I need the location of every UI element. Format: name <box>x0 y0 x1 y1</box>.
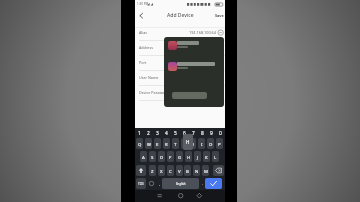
button[interactable]: Z <box>149 165 156 176</box>
staticText: Device Password <box>139 90 169 95</box>
staticText: 5 <box>174 130 177 137</box>
button[interactable]: Save <box>213 11 225 20</box>
staticText: H <box>187 154 191 160</box>
staticText: U <box>191 141 195 147</box>
staticText: User Name <box>139 75 159 80</box>
button[interactable] <box>154 191 165 201</box>
button[interactable] <box>194 191 205 201</box>
staticText: L <box>214 154 217 160</box>
staticText: D <box>160 154 164 160</box>
button[interactable]: J <box>194 151 201 162</box>
staticText: E <box>156 141 159 147</box>
staticText: C <box>169 168 172 174</box>
staticText: Z <box>151 168 154 174</box>
button[interactable]: I <box>198 138 205 149</box>
button[interactable] <box>213 165 224 176</box>
button[interactable] <box>168 41 177 50</box>
staticText: 4 <box>165 130 168 137</box>
staticText: G <box>178 154 182 160</box>
button[interactable]: C <box>167 165 174 176</box>
staticText: Add Device <box>167 12 194 19</box>
staticText: ?123 <box>138 182 144 186</box>
staticText: W <box>147 141 151 147</box>
staticText: 9 <box>210 130 213 137</box>
button[interactable] <box>168 62 177 71</box>
staticText: X <box>160 168 163 174</box>
button[interactable]: R <box>163 138 170 149</box>
staticText: F <box>169 154 172 160</box>
staticText: 1:30 PM <box>137 2 148 6</box>
button[interactable]: F <box>167 151 174 162</box>
staticText: O <box>209 141 213 147</box>
button[interactable] <box>205 178 222 189</box>
button[interactable]: L <box>212 151 219 162</box>
button[interactable]: English <box>162 178 199 189</box>
button[interactable] <box>136 165 146 176</box>
staticText: S <box>151 154 154 160</box>
staticText: T <box>174 141 177 147</box>
button[interactable]: D <box>158 151 165 162</box>
staticText: Alias <box>139 30 148 35</box>
button[interactable]: B <box>184 165 191 176</box>
staticText: 0 <box>219 130 222 137</box>
button[interactable]: S <box>149 151 156 162</box>
staticText: 7 <box>192 130 195 137</box>
button[interactable]: A <box>140 151 147 162</box>
staticText: Address <box>139 45 153 50</box>
button[interactable]: O <box>207 138 214 149</box>
button[interactable]: W <box>145 138 152 149</box>
staticText: , <box>159 181 161 186</box>
staticText: I <box>201 141 203 147</box>
staticText: R <box>165 141 168 147</box>
button[interactable]: N <box>193 165 200 176</box>
staticText: 1 <box>138 130 141 137</box>
button[interactable]: Q <box>136 138 143 149</box>
staticText: Q <box>138 141 142 147</box>
staticText: N <box>195 168 199 174</box>
staticText: P <box>218 141 221 147</box>
button[interactable]: K <box>203 151 210 162</box>
staticText: English <box>176 182 186 186</box>
staticText: Save <box>215 13 224 18</box>
staticText: A <box>142 154 145 160</box>
button[interactable]: G <box>176 151 183 162</box>
staticText: 2 <box>147 130 150 137</box>
button[interactable]: H <box>185 151 192 162</box>
button[interactable]: ?123 <box>136 178 146 189</box>
button[interactable] <box>147 178 156 189</box>
button[interactable]: M <box>202 165 209 176</box>
staticText: H <box>186 139 190 145</box>
staticText: M <box>204 168 208 174</box>
staticText: B <box>186 168 189 174</box>
button[interactable]: X <box>158 165 165 176</box>
staticText: 192.168.100.64 <box>189 30 216 35</box>
staticText: J <box>197 154 199 160</box>
staticText: 3 <box>156 130 159 137</box>
staticText: V <box>178 168 181 174</box>
staticText: 6 <box>183 130 186 137</box>
staticText: 8 <box>201 130 204 137</box>
button[interactable]: E <box>154 138 161 149</box>
button[interactable]: U <box>189 138 196 149</box>
staticText: Port <box>139 60 147 65</box>
button[interactable]: V <box>176 165 183 176</box>
button[interactable] <box>175 191 186 201</box>
button[interactable]: P <box>216 138 223 149</box>
staticText: K <box>205 154 208 160</box>
button[interactable]: Y <box>181 138 188 149</box>
staticText: . <box>202 181 204 186</box>
button[interactable]: T <box>172 138 179 149</box>
button[interactable] <box>172 92 207 99</box>
button[interactable] <box>136 10 146 21</box>
